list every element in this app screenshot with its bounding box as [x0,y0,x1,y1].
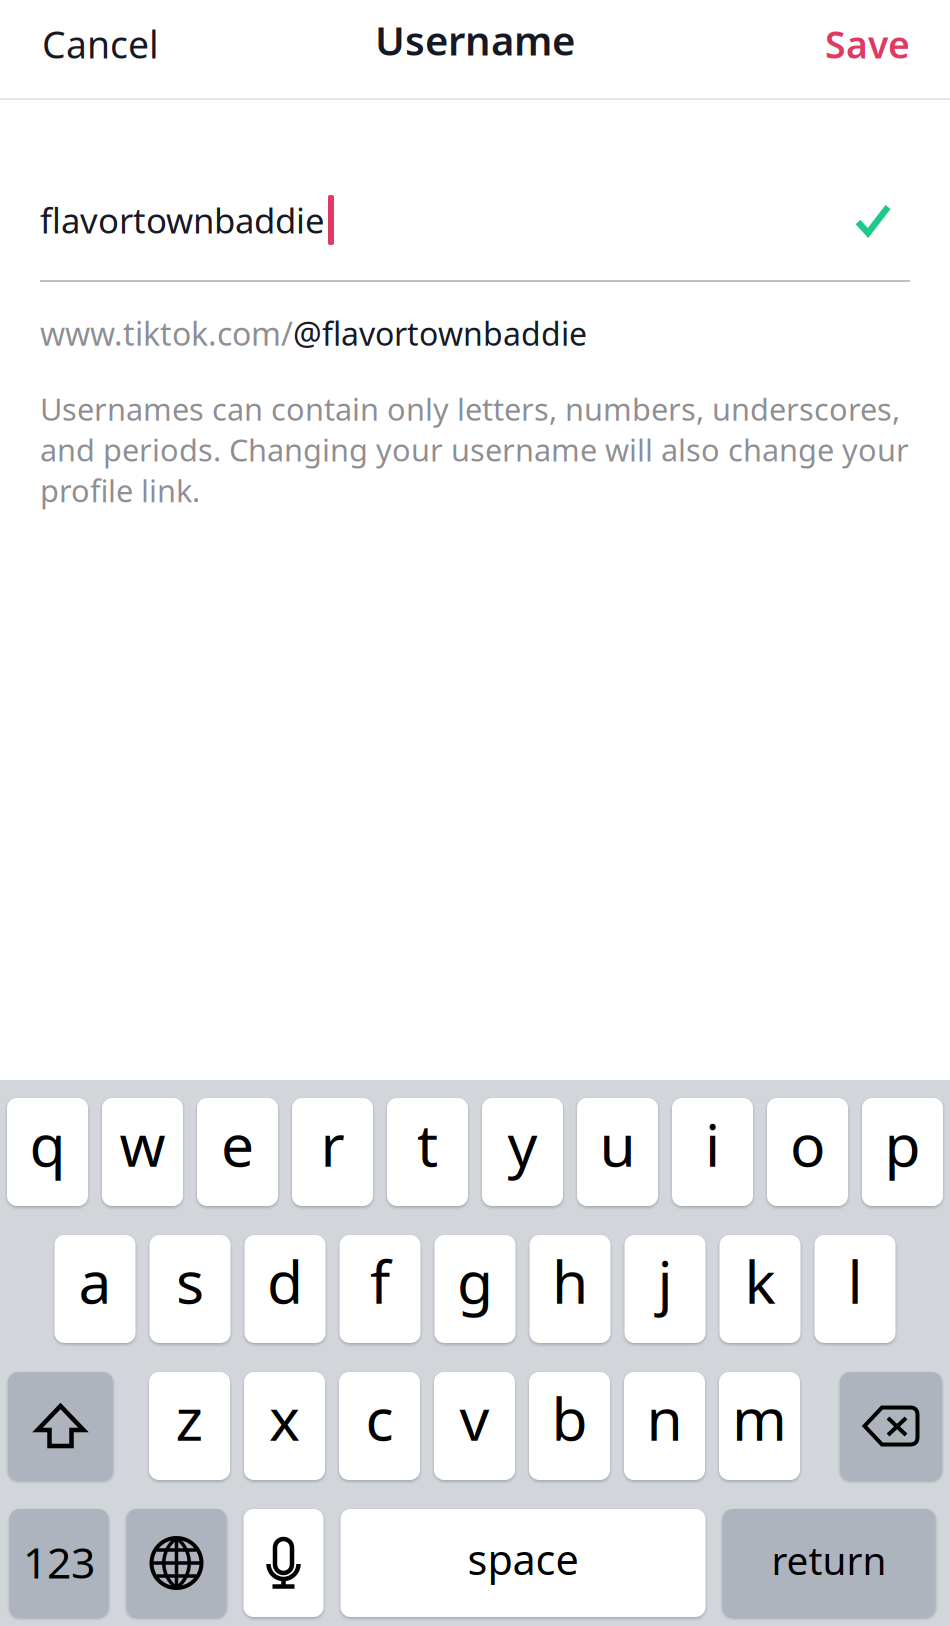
button[interactable]: Delete [840,1372,942,1480]
button[interactable]: q [7,1098,88,1206]
staticText: z [175,1379,203,1457]
staticText: s [176,1242,204,1320]
button[interactable]: w [102,1098,183,1206]
staticText: j [657,1242,672,1320]
staticText: n [646,1379,682,1457]
button[interactable]: z [149,1372,230,1480]
staticText: Cancel [42,19,159,69]
staticText: Username [375,13,575,66]
staticText: b [551,1379,587,1457]
button[interactable]: j [624,1235,705,1343]
button[interactable]: m [719,1372,800,1480]
staticText: 123 [23,1534,95,1590]
button[interactable]: Save [801,0,950,91]
staticText: www.tiktok.com/ [40,312,293,354]
button[interactable]: t [387,1098,468,1206]
staticText: o [790,1105,825,1183]
staticText: flavortownbaddie [40,197,325,243]
staticText: v [459,1379,489,1457]
button[interactable]: l [814,1235,895,1343]
button[interactable]: u [577,1098,658,1206]
button[interactable]: Dictation [243,1509,323,1617]
button[interactable]: return [722,1509,935,1617]
button[interactable]: r [292,1098,373,1206]
button[interactable]: o [767,1098,848,1206]
staticText: p [884,1105,920,1183]
staticText: return [771,1534,886,1586]
staticText: a [78,1242,111,1320]
staticText: m [732,1379,787,1457]
staticText: q [29,1105,65,1183]
staticText: r [320,1105,344,1183]
button[interactable]: x [244,1372,325,1480]
button[interactable]: v [434,1372,515,1480]
button[interactable]: c [339,1372,420,1480]
staticText: y [507,1105,537,1183]
staticText: f [370,1242,390,1320]
staticText: g [457,1242,493,1320]
staticText: k [744,1242,775,1320]
button[interactable]: n [624,1372,705,1480]
button[interactable]: space [340,1509,705,1617]
button[interactable]: p [862,1098,943,1206]
staticText: h [552,1242,588,1320]
button[interactable]: a [54,1235,135,1343]
staticText: w [119,1105,165,1183]
staticText: Save [825,19,910,69]
button[interactable]: h [529,1235,610,1343]
staticText: Usernames can contain only letters, numb… [40,388,909,511]
button[interactable]: Cancel [0,0,183,91]
staticText: i [705,1105,720,1183]
staticText: c [365,1379,393,1457]
button[interactable]: s [149,1235,230,1343]
button[interactable]: d [244,1235,325,1343]
button[interactable]: Shift [8,1372,113,1480]
staticText: x [269,1379,300,1457]
button[interactable]: f [339,1235,420,1343]
staticText: e [221,1105,254,1183]
button[interactable]: g [434,1235,515,1343]
staticText: l [847,1242,862,1320]
staticText: d [267,1242,303,1320]
button[interactable]: k [719,1235,800,1343]
staticText: u [599,1105,635,1183]
staticText: space [467,1532,578,1586]
button[interactable]: e [197,1098,278,1206]
staticText: @flavortownbaddie [293,312,587,354]
button[interactable]: 123 [9,1509,108,1617]
button[interactable]: y [482,1098,563,1206]
button[interactable]: Next keyboard [126,1509,226,1617]
button[interactable]: b [529,1372,610,1480]
button[interactable]: i [672,1098,753,1206]
staticText: t [417,1105,438,1183]
